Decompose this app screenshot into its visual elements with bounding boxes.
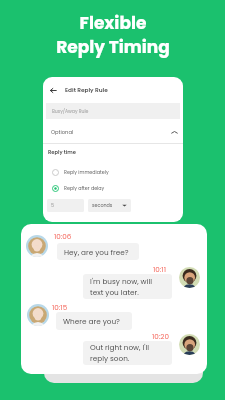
button[interactable]: Reply after delay [52,182,105,194]
button[interactable]: Reply immediately [52,166,109,178]
staticText: Where are you? [63,316,120,326]
staticText: 10:11 [153,264,166,274]
button[interactable]: Out right now, I'll reply soon. [83,341,172,365]
button[interactable]: 5 [47,199,84,212]
other: Back [47,84,59,96]
button[interactable]: Back [47,83,108,97]
button[interactable]: Where are you? [56,312,132,330]
button[interactable]: Hey, are you free? [57,243,139,260]
staticText: 10:06 [54,231,72,241]
button[interactable]: Busy/Away Rule [46,103,180,119]
button[interactable]: Optional [43,120,183,144]
staticText: 10:15 [52,302,68,312]
staticText: I'm busy now, will text you later. [90,276,166,298]
button[interactable]: I'm busy now, will text you later. [83,274,172,299]
staticText: seconds [92,202,113,209]
staticText: Flexible Reply Timing [56,11,170,59]
staticText: Reply after delay [64,185,105,192]
staticText: 10:20 [152,331,169,341]
staticText: Busy/Away Rule [52,108,89,114]
button[interactable]: seconds [88,199,131,212]
staticText: Optional [51,129,74,136]
staticText: Edit Reply Rule [65,86,108,94]
staticText: 5 [51,202,55,209]
staticText: Out right now, I'll reply soon. [90,342,166,364]
staticText: Reply time [48,149,76,156]
staticText: Hey, are you free? [64,247,129,257]
staticText: Reply immediately [64,169,109,176]
